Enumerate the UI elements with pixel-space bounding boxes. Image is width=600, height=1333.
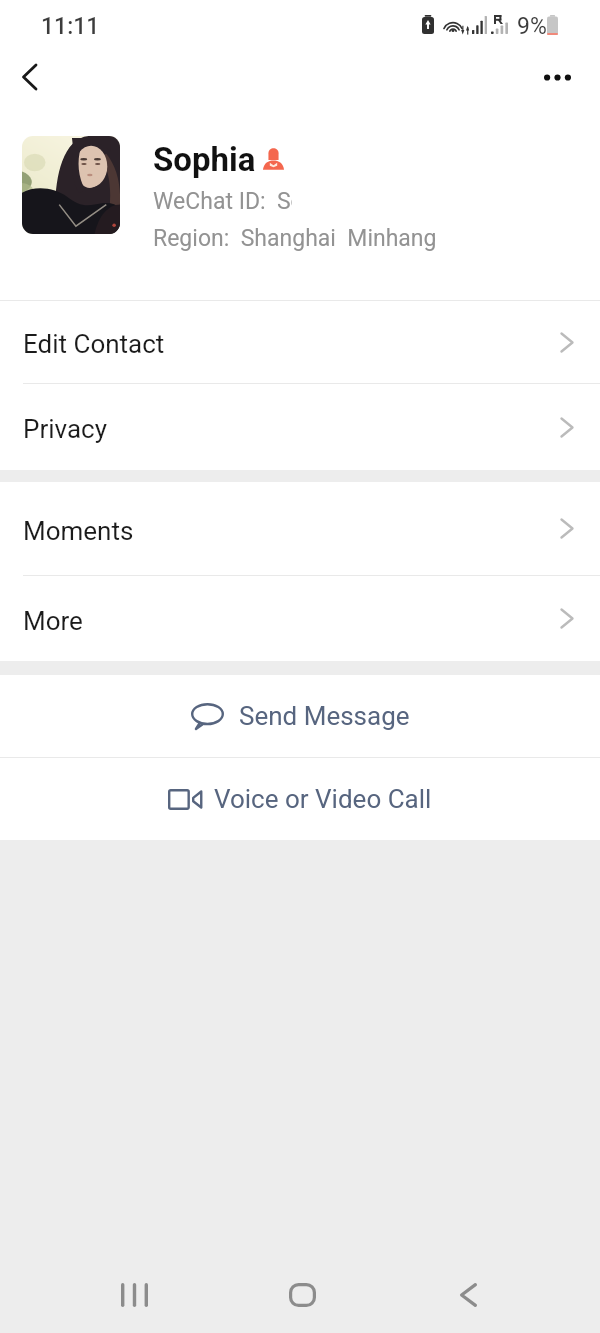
button[interactable]: Send Message (0, 675, 600, 757)
staticText: 9% (517, 13, 547, 40)
button[interactable]: Back (428, 1255, 509, 1333)
staticText: Send Message (239, 701, 410, 731)
button[interactable]: Sophia (0, 0, 600, 300)
button[interactable]: Voice or Video Call (0, 758, 600, 840)
staticText: Region: Shanghai Minhang (153, 225, 437, 252)
staticText: WeChat ID: Sop (153, 188, 317, 215)
button[interactable]: More (0, 576, 600, 661)
button[interactable]: Moments (0, 482, 600, 575)
button[interactable]: Edit Contact (0, 301, 600, 383)
staticText: Sophia (153, 140, 256, 179)
button[interactable]: Home (262, 1255, 343, 1333)
button[interactable]: Recents (94, 1255, 175, 1333)
staticText: Voice or Video Call (214, 784, 432, 814)
staticText: Privacy (23, 414, 107, 444)
staticText: More (23, 606, 83, 636)
staticText: 11:11 (41, 13, 100, 40)
button[interactable]: More options (528, 48, 586, 106)
button[interactable]: Back (0, 48, 58, 106)
staticText: Edit Contact (23, 329, 165, 359)
staticText: Moments (23, 516, 134, 546)
button[interactable]: Privacy (0, 384, 600, 470)
